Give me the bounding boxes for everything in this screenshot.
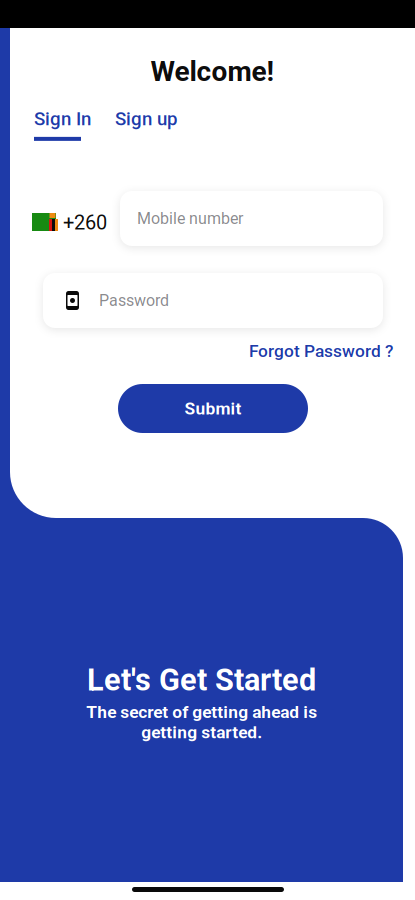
- button[interactable]: Sign up: [115, 108, 177, 130]
- button[interactable]: Sign In: [34, 108, 91, 141]
- button[interactable]: Submit: [118, 384, 308, 433]
- staticText: Let's Get Started: [87, 662, 316, 698]
- staticText: The secret of getting ahead is getting s…: [86, 702, 317, 742]
- staticText: Sign up: [115, 108, 177, 130]
- staticText: Submit: [184, 398, 241, 419]
- button[interactable]: Forgot Password ?: [249, 341, 393, 361]
- staticText: Forgot Password ?: [249, 341, 393, 361]
- staticText: Welcome!: [150, 55, 274, 88]
- staticText: Mobile number: [137, 209, 243, 228]
- staticText: Password: [99, 291, 169, 310]
- staticText: +260: [63, 211, 107, 234]
- staticText: Sign In: [34, 108, 91, 130]
